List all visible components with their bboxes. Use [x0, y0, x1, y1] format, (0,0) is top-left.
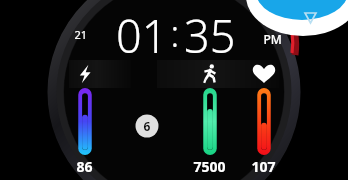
button[interactable]: Watch face with time and fitness complic…: [0, 0, 348, 180]
